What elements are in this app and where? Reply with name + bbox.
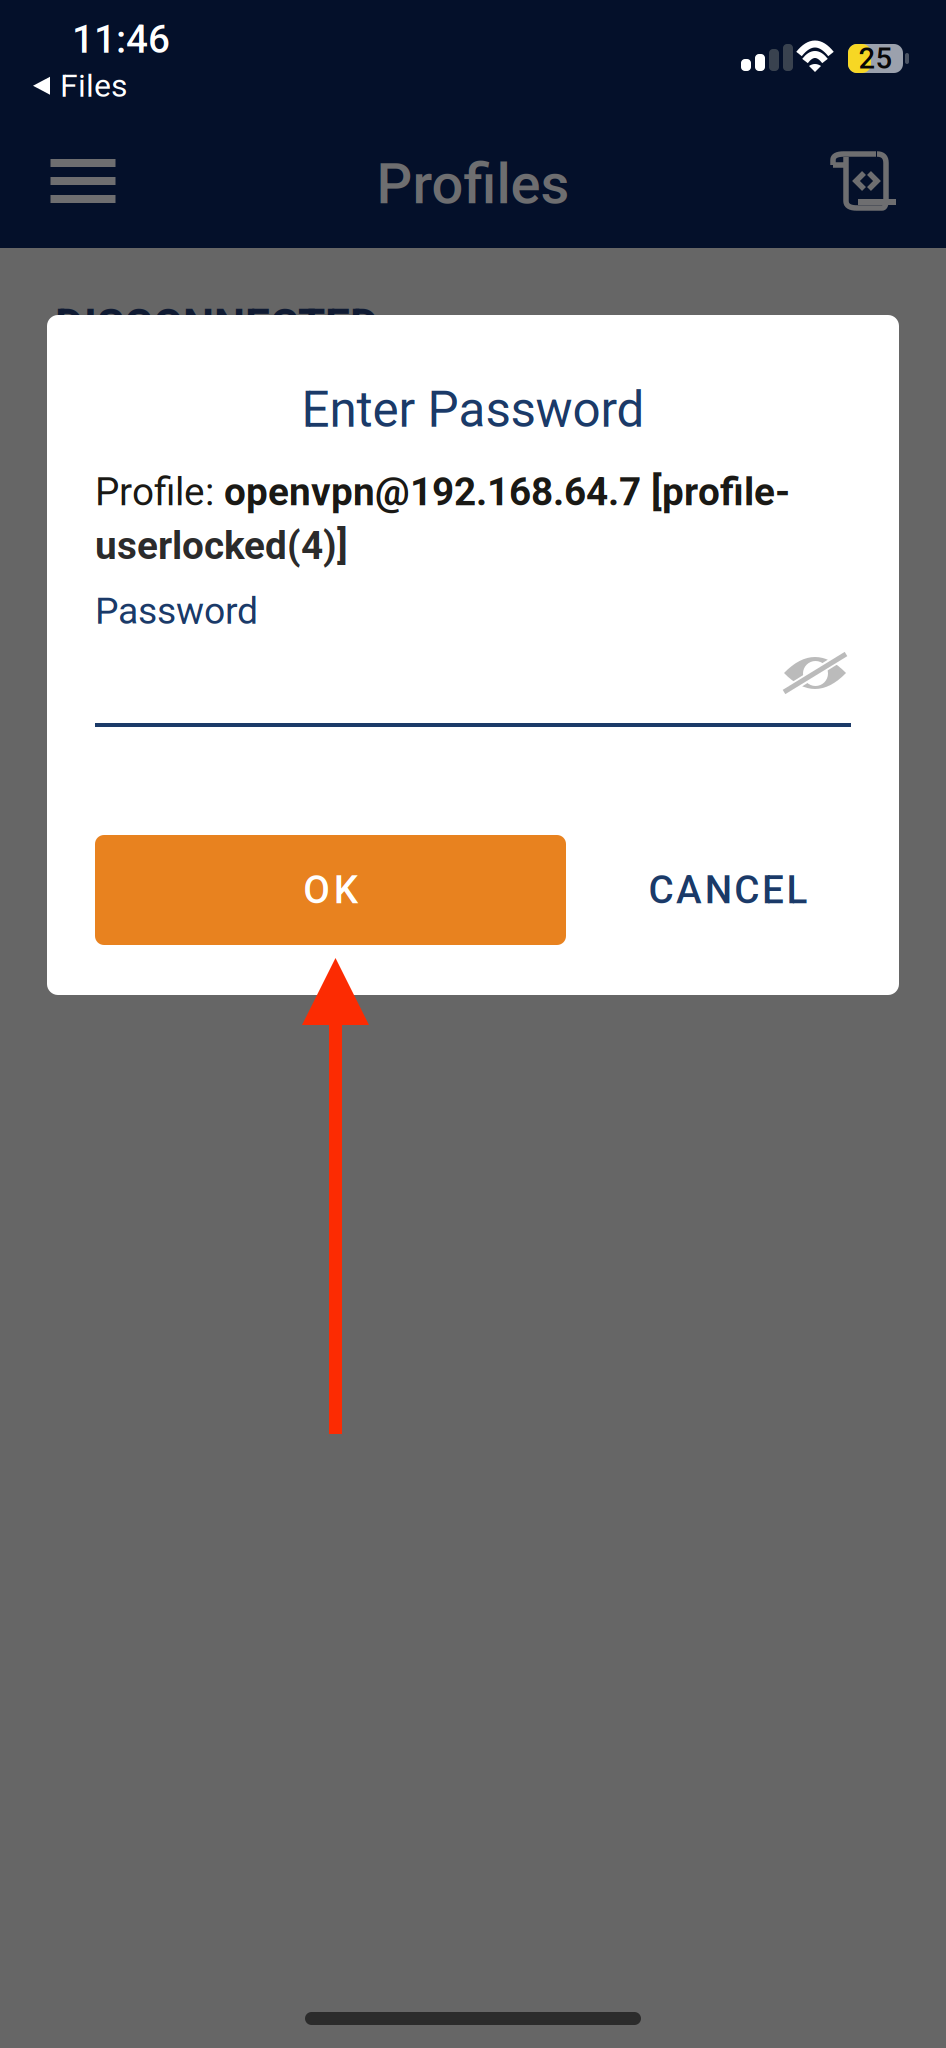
staticText: Enter Password — [301, 381, 644, 439]
staticText: Profile: openvpn@192.168.64.7 [profile- — [95, 470, 790, 514]
staticText: Password — [95, 589, 258, 633]
staticText: 11:46 — [72, 17, 170, 62]
button[interactable]: Files — [33, 63, 128, 108]
staticText: OK — [303, 867, 358, 913]
button[interactable]: OK — [95, 835, 566, 945]
staticText: Profiles — [376, 151, 569, 217]
button[interactable]: CANCEL — [613, 835, 843, 945]
staticText: userlocked(4)] — [95, 523, 348, 568]
staticText: 25 — [858, 41, 892, 76]
staticText: Files — [60, 67, 128, 104]
button[interactable]: Menu — [18, 129, 148, 233]
staticText: DISCONNECTED — [55, 300, 379, 352]
button[interactable]: Show password — [769, 640, 861, 706]
staticText: CANCEL — [648, 867, 807, 913]
button[interactable]: Import profile — [809, 129, 919, 233]
